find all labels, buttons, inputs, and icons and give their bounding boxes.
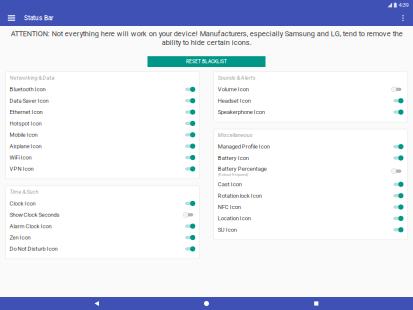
button[interactable]: NFC Icon bbox=[214, 201, 407, 213]
staticText: Do Not Disturb Icon bbox=[10, 245, 58, 252]
staticText: Networking & Data bbox=[10, 74, 55, 81]
button[interactable]: Show Clock Seconds bbox=[5, 209, 199, 220]
staticText: Mobile Icon bbox=[10, 131, 38, 138]
button[interactable]: Airplane Icon bbox=[5, 140, 199, 152]
staticText: Headset Icon bbox=[218, 97, 251, 104]
staticText: Managed Profile Icon bbox=[218, 143, 270, 150]
staticText: Cast Icon bbox=[218, 181, 242, 188]
staticText: 4:39 bbox=[398, 2, 408, 8]
button[interactable]: Do Not Disturb Icon bbox=[5, 243, 199, 255]
staticText: Status Bar bbox=[24, 14, 53, 22]
button[interactable]: Clock Icon bbox=[5, 198, 199, 209]
button[interactable]: Hotspot Icon bbox=[5, 118, 199, 129]
staticText: Hotspot Icon bbox=[10, 120, 42, 127]
button[interactable]: Mobile Icon bbox=[5, 129, 199, 140]
staticText: Battery Percentage bbox=[218, 165, 267, 172]
staticText: Battery Icon bbox=[218, 155, 249, 161]
button[interactable]: Ethernet Icon bbox=[5, 106, 199, 118]
staticText: Bluetooth Icon bbox=[10, 86, 46, 93]
staticText: RESET BLACKLIST bbox=[186, 59, 227, 64]
staticText: Show Clock Seconds bbox=[10, 211, 60, 218]
staticText: Sounds & Alerts bbox=[218, 74, 256, 81]
staticText: Volume Icon bbox=[218, 86, 249, 93]
button[interactable]: Battery Icon bbox=[214, 152, 407, 164]
staticText: Data Saver Icon bbox=[10, 97, 49, 104]
button[interactable]: Bluetooth Icon bbox=[5, 84, 199, 95]
button[interactable]: Recent apps bbox=[303, 297, 329, 310]
staticText: Speakerphone Icon bbox=[218, 109, 265, 115]
button[interactable]: Home bbox=[193, 297, 219, 310]
staticText: Location Icon bbox=[218, 215, 251, 222]
staticText: Clock Icon bbox=[10, 200, 36, 207]
button[interactable]: Headset Icon bbox=[214, 95, 407, 106]
button[interactable]: Rotation lock Icon bbox=[214, 190, 407, 201]
button[interactable]: Data Saver Icon bbox=[5, 95, 199, 106]
button[interactable]: Cast Icon bbox=[214, 179, 407, 190]
button[interactable]: SU Icon bbox=[214, 224, 407, 235]
button[interactable]: More options bbox=[396, 10, 410, 26]
button[interactable]: Alarm Clock Icon bbox=[5, 220, 199, 232]
staticText: Miscellaneous bbox=[218, 132, 253, 138]
staticText: VPN Icon bbox=[10, 165, 34, 172]
button[interactable]: Zen Icon bbox=[5, 232, 199, 243]
staticText: Time & Such bbox=[10, 188, 39, 195]
staticText: ATTENTION: Not everything here will work… bbox=[10, 29, 402, 47]
button[interactable]: RESET BLACKLIST bbox=[147, 56, 265, 67]
button[interactable]: Back bbox=[84, 297, 110, 310]
staticText: (Reboot Required) bbox=[218, 172, 248, 177]
staticText: Airplane Icon bbox=[10, 143, 42, 149]
staticText: Ethernet Icon bbox=[10, 109, 43, 115]
staticText: Rotation lock Icon bbox=[218, 192, 262, 199]
button[interactable]: Battery Percentage bbox=[214, 164, 407, 179]
staticText: SU Icon bbox=[218, 226, 237, 233]
button[interactable]: Volume Icon bbox=[214, 84, 407, 95]
button[interactable]: Managed Profile Icon bbox=[214, 141, 407, 152]
button[interactable]: VPN Icon bbox=[5, 163, 199, 175]
button[interactable]: Speakerphone Icon bbox=[214, 106, 407, 118]
button[interactable]: WiFi Icon bbox=[5, 152, 199, 163]
button[interactable]: Open navigation drawer bbox=[4, 10, 19, 26]
button[interactable]: Location Icon bbox=[214, 213, 407, 224]
staticText: Alarm Clock Icon bbox=[10, 223, 52, 229]
staticText: WiFi Icon bbox=[10, 154, 32, 161]
staticText: Zen Icon bbox=[10, 234, 31, 241]
staticText: NFC Icon bbox=[218, 204, 241, 210]
